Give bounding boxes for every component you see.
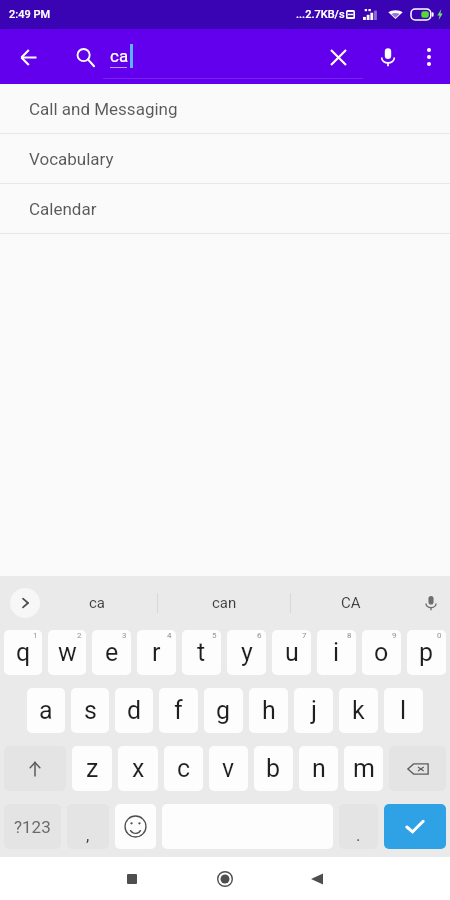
staticText: 7 — [302, 631, 307, 640]
button[interactable]: More options — [411, 39, 447, 75]
button[interactable]: y — [227, 630, 266, 675]
staticText: f — [174, 696, 183, 725]
staticText: 1 — [33, 631, 38, 640]
staticText: i — [333, 638, 340, 667]
button[interactable]: Shift — [4, 746, 66, 791]
button[interactable]: c — [164, 746, 203, 791]
staticText: 5 — [212, 631, 217, 640]
button[interactable]: k — [339, 688, 378, 733]
staticText: ...2.7KB/s — [296, 8, 345, 21]
button[interactable]: Voice input — [411, 576, 450, 630]
staticText: , — [86, 825, 90, 845]
staticText: 3 — [122, 631, 127, 640]
button[interactable]: Vocabulary — [0, 134, 450, 184]
button[interactable]: Calendar — [0, 184, 450, 234]
staticText: ca — [89, 594, 106, 612]
staticText: o — [374, 638, 389, 667]
staticText: 6 — [257, 631, 262, 640]
button[interactable]: q — [4, 630, 42, 675]
button[interactable]: g — [204, 688, 243, 733]
button[interactable]: v — [209, 746, 248, 791]
staticText: can — [212, 594, 237, 612]
staticText: y — [241, 638, 253, 667]
staticText: s — [84, 696, 97, 725]
staticText: q — [16, 638, 31, 667]
staticText: k — [352, 696, 365, 725]
button[interactable]: ?123 — [4, 804, 61, 849]
staticText: n — [312, 754, 326, 783]
staticText: Calendar — [29, 199, 97, 219]
staticText: CA — [341, 594, 361, 612]
staticText: w — [58, 638, 77, 667]
staticText: j — [311, 696, 317, 725]
button[interactable]: h — [249, 688, 288, 733]
button[interactable]: z — [72, 746, 112, 791]
button[interactable]: x — [118, 746, 158, 791]
staticText: g — [216, 696, 231, 725]
staticText: . — [356, 825, 361, 845]
staticText: a — [39, 696, 53, 725]
button[interactable]: b — [254, 746, 293, 791]
staticText: t — [197, 638, 206, 667]
button[interactable]: i — [317, 630, 356, 675]
button[interactable]: e — [92, 630, 131, 675]
button[interactable]: t — [182, 630, 221, 675]
button[interactable]: d — [115, 688, 153, 733]
button[interactable]: w — [48, 630, 86, 675]
button[interactable]: r — [137, 630, 176, 675]
staticText: 4 — [167, 631, 172, 640]
staticText: e — [105, 638, 119, 667]
staticText: 8 — [347, 631, 352, 640]
button[interactable]: Emoji — [115, 804, 156, 849]
staticText: u — [285, 638, 299, 667]
button[interactable]: a — [27, 688, 65, 733]
staticText: b — [266, 754, 281, 783]
button[interactable]: l — [384, 688, 423, 733]
staticText: Call and Messaging — [29, 99, 178, 119]
button[interactable]: , — [67, 804, 109, 849]
button[interactable]: Navigate up — [10, 39, 46, 75]
staticText: p — [419, 638, 434, 667]
staticText: h — [262, 696, 276, 725]
button[interactable]: can — [158, 576, 291, 630]
button[interactable]: Enter — [384, 804, 446, 849]
staticText: 2:49 PM — [9, 8, 51, 21]
button[interactable]: Back — [295, 857, 339, 900]
button[interactable]: Voice search — [370, 39, 406, 75]
button[interactable]: Home — [203, 857, 247, 900]
button[interactable]: CA — [291, 576, 411, 630]
staticText: m — [353, 754, 375, 783]
button[interactable]: Call and Messaging — [0, 84, 450, 134]
button[interactable]: . — [339, 804, 378, 849]
button[interactable]: More suggestions — [10, 588, 40, 618]
button[interactable]: j — [294, 688, 333, 733]
staticText: r — [152, 638, 161, 667]
button[interactable]: u — [272, 630, 311, 675]
button[interactable]: m — [344, 746, 383, 791]
staticText: 9 — [392, 631, 397, 640]
button[interactable]: p — [407, 630, 446, 675]
button[interactable]: Recents — [110, 857, 154, 900]
staticText: d — [127, 696, 142, 725]
button[interactable]: s — [71, 688, 109, 733]
button[interactable]: n — [299, 746, 338, 791]
staticText: ?123 — [14, 817, 51, 837]
staticText: ca — [110, 46, 129, 66]
staticText: l — [400, 696, 407, 725]
staticText: v — [222, 754, 235, 783]
button[interactable]: Backspace — [389, 746, 446, 791]
staticText: c — [177, 754, 191, 783]
staticText: 0 — [437, 631, 442, 640]
button[interactable]: f — [159, 688, 198, 733]
staticText: Vocabulary — [29, 149, 114, 169]
button[interactable]: ca — [36, 576, 158, 630]
button[interactable]: Clear query — [320, 39, 356, 75]
staticText: z — [86, 754, 99, 783]
staticText: 2 — [77, 631, 82, 640]
button[interactable]: o — [362, 630, 401, 675]
staticText: x — [132, 754, 145, 783]
